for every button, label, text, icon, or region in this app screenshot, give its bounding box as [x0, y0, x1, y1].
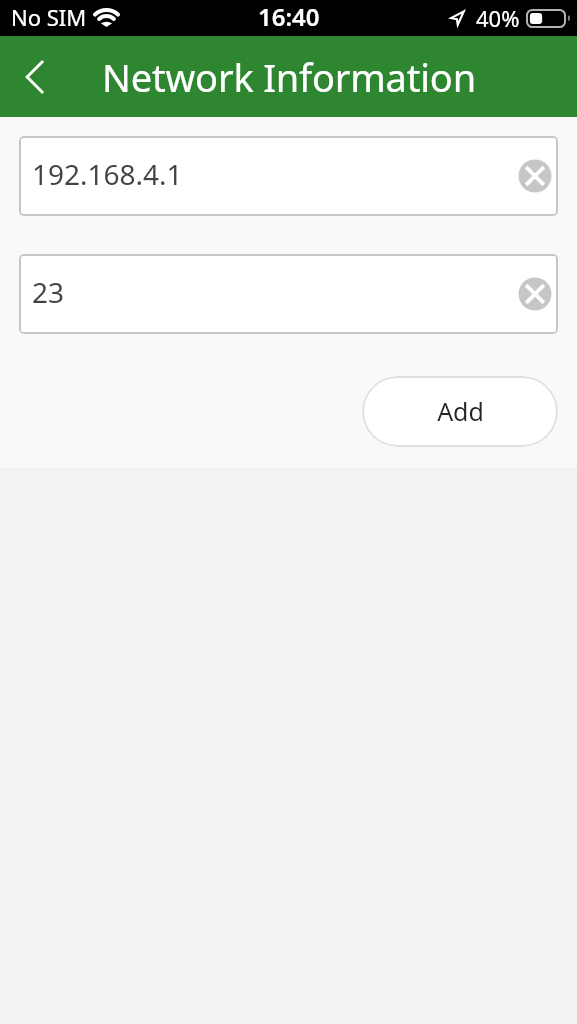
staticText: 192.168.4.1 — [32, 155, 183, 193]
staticText: 40% — [476, 3, 520, 33]
button[interactable]: 23 — [19, 254, 558, 334]
button[interactable]: Clear text — [513, 154, 557, 198]
button[interactable]: 192.168.4.1 — [19, 136, 558, 216]
staticText: Add — [437, 394, 484, 428]
button[interactable]: Back — [8, 50, 62, 104]
button[interactable]: Add — [362, 376, 558, 447]
button[interactable]: Clear text — [513, 272, 557, 316]
staticText: Network Information — [102, 51, 476, 103]
staticText: 16:40 — [258, 0, 320, 33]
staticText: No SIM — [11, 2, 87, 32]
staticText: 23 — [32, 273, 65, 311]
